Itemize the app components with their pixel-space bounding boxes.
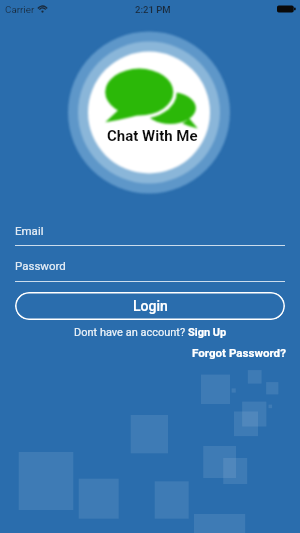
staticText: Dont have an account? — [74, 326, 188, 339]
staticText: Chat With Me — [107, 127, 198, 145]
button[interactable]: Email — [15, 224, 285, 246]
staticText: Carrier — [5, 4, 35, 15]
button[interactable]: Login — [15, 292, 285, 320]
button[interactable]: Dont have an account? — [74, 326, 227, 339]
button[interactable]: Forgot Password? — [192, 346, 286, 360]
other: Battery full — [277, 0, 296, 18]
staticText: Email — [15, 224, 44, 237]
staticText: Login — [133, 298, 168, 314]
button[interactable]: Password — [15, 259, 285, 282]
other: Wi-Fi signal — [38, 0, 47, 18]
staticText: Password — [15, 259, 66, 272]
staticText: 2:21 PM — [135, 4, 171, 15]
staticText: Sign Up — [188, 326, 227, 339]
